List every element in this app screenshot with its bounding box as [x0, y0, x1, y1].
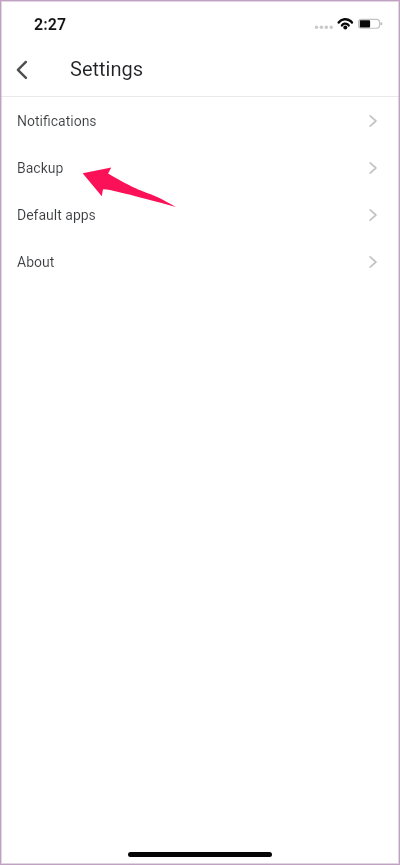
staticText: Backup: [17, 160, 64, 176]
staticText: Settings: [70, 57, 144, 80]
staticText: Notifications: [17, 113, 97, 129]
staticText: 2:27: [34, 15, 67, 34]
button[interactable]: About: [0, 238, 400, 285]
staticText: About: [17, 254, 55, 270]
staticText: Default apps: [17, 207, 96, 223]
button[interactable]: Back: [0, 48, 44, 92]
button[interactable]: Notifications: [0, 97, 400, 144]
button[interactable]: Default apps: [0, 191, 400, 238]
button[interactable]: Backup: [0, 144, 400, 191]
